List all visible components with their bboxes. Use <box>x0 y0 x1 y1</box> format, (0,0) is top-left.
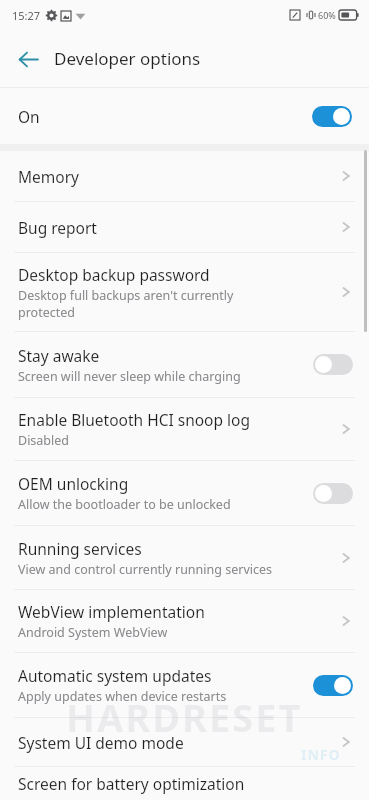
staticText: Allow the bootloader to be unlocked <box>18 496 231 513</box>
staticText: 15:27 <box>12 8 41 23</box>
button[interactable]: Stay awake <box>0 332 369 397</box>
button[interactable]: Toggle on <box>312 106 352 127</box>
staticText: Running services <box>18 538 142 559</box>
staticText: OEM unlocking <box>18 473 129 494</box>
button[interactable]: WebView implementation <box>0 590 369 652</box>
button[interactable]: Desktop backup password <box>0 253 369 331</box>
button[interactable]: OEM unlocking <box>0 461 369 525</box>
staticText: Automatic system updates <box>18 665 212 686</box>
staticText: WebView implementation <box>18 601 205 622</box>
staticText: View and control currently running servi… <box>18 561 273 578</box>
button[interactable]: Back <box>8 39 48 79</box>
staticText: Enable Bluetooth HCI snoop log <box>18 409 250 430</box>
button[interactable]: Toggle on <box>313 675 353 696</box>
staticText: Android System WebView <box>18 624 168 641</box>
staticText: Memory <box>18 166 79 187</box>
button[interactable]: Bug report <box>0 202 369 252</box>
button[interactable]: Toggle off <box>313 354 353 375</box>
button[interactable]: Toggle off <box>313 483 353 504</box>
button[interactable]: Screen for battery optimization <box>0 767 369 800</box>
staticText: Disabled <box>18 432 70 449</box>
button[interactable]: Automatic system updates <box>0 653 369 717</box>
staticText: Desktop backup password <box>18 264 210 285</box>
button[interactable]: Running services <box>0 526 369 589</box>
staticText: Developer options <box>54 47 201 70</box>
button[interactable]: On <box>0 88 369 144</box>
button[interactable]: System UI demo mode <box>0 718 369 766</box>
button[interactable]: Enable Bluetooth HCI snoop log <box>0 398 369 460</box>
staticText: On <box>18 106 40 127</box>
staticText: INFO <box>301 745 341 764</box>
staticText: Stay awake <box>18 345 100 366</box>
staticText: System UI demo mode <box>18 732 184 753</box>
button[interactable]: Memory <box>0 151 369 201</box>
staticText: Bug report <box>18 217 97 238</box>
staticText: 60% <box>318 9 336 21</box>
staticText: HARDRESET <box>66 691 303 743</box>
staticText: Desktop full backups aren't currently pr… <box>18 287 234 320</box>
staticText: Screen for battery optimization <box>18 773 245 794</box>
staticText: Screen will never sleep while charging <box>18 368 241 385</box>
staticText: Apply updates when device restarts <box>18 688 227 705</box>
